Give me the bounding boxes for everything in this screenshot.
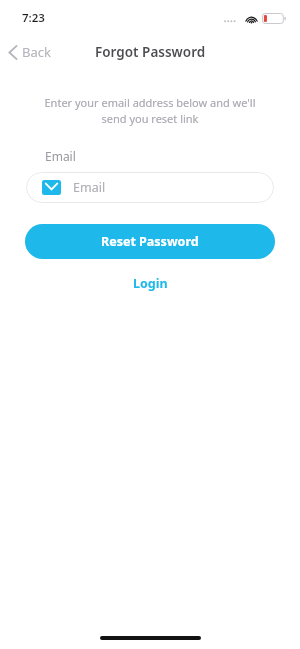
staticText: 7:23 <box>22 10 45 26</box>
staticText: Forgot Password <box>95 43 206 61</box>
staticText: Email <box>73 179 106 196</box>
staticText: Reset Password <box>101 233 199 250</box>
other: Email <box>42 180 61 195</box>
button[interactable]: Email <box>26 172 274 203</box>
staticText: Enter your email address below and we'll… <box>32 95 268 126</box>
staticText: Back <box>22 43 51 61</box>
button[interactable]: Back <box>0 39 61 65</box>
button[interactable]: Reset Password <box>25 224 275 259</box>
staticText: Email <box>45 148 76 164</box>
staticText: Login <box>133 275 168 292</box>
button[interactable]: Login <box>121 271 180 296</box>
